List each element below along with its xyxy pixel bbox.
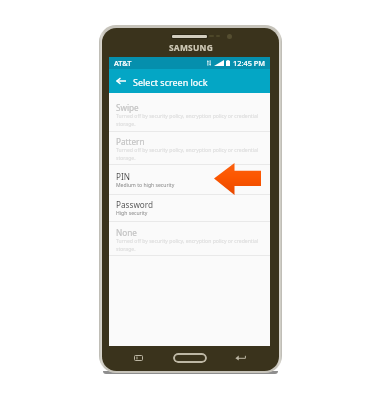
button[interactable]: Back	[232, 349, 249, 367]
button[interactable]: PIN	[109, 165, 270, 195]
staticText: SAMSUNG	[169, 42, 213, 53]
staticText: Medium to high security	[116, 182, 175, 189]
staticText: Select screen lock	[133, 76, 208, 88]
staticText: None	[116, 227, 137, 238]
staticText: AT&T	[114, 58, 132, 68]
button[interactable]: Navigate up	[113, 73, 129, 89]
staticText: Swipe	[116, 102, 139, 113]
button[interactable]: Recent apps	[130, 349, 147, 367]
staticText: Turned off by security policy, encryptio…	[116, 238, 263, 252]
staticText: Turned off by security policy, encryptio…	[116, 147, 263, 161]
staticText: 12:45 PM	[233, 58, 266, 68]
button[interactable]: None	[109, 222, 270, 256]
staticText: PIN	[116, 171, 130, 182]
button[interactable]: Swipe	[109, 93, 270, 132]
staticText: High security	[116, 210, 148, 217]
staticText: Pattern	[116, 136, 145, 147]
staticText: Password	[116, 199, 154, 210]
staticText: Turned off by security policy, encryptio…	[116, 113, 263, 127]
button[interactable]: Home	[173, 353, 207, 363]
button[interactable]: Pattern	[109, 132, 270, 165]
button[interactable]: Password	[109, 195, 270, 222]
